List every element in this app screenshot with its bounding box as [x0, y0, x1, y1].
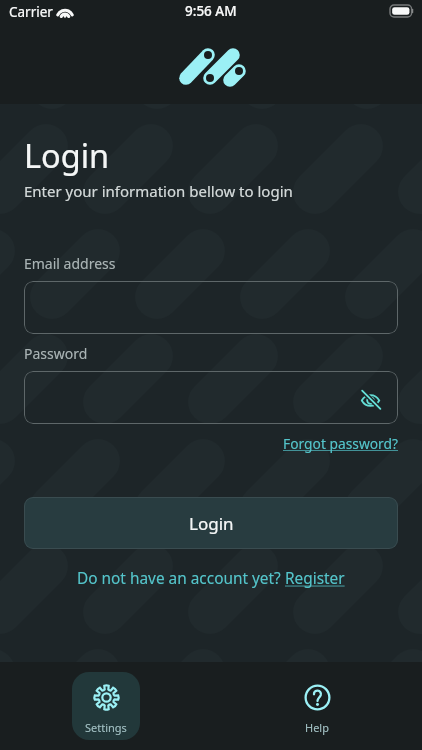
staticText: Password [24, 344, 88, 363]
staticText: Settings [85, 720, 127, 735]
button[interactable]: Register [285, 568, 345, 589]
staticText: Help [305, 720, 329, 735]
staticText: Enter your information bellow to login [24, 181, 293, 201]
staticText: Do not have an account yet? [77, 568, 285, 589]
staticText: Forgot password? [283, 434, 398, 453]
staticText: Register [285, 568, 345, 589]
button[interactable] [24, 281, 398, 334]
button[interactable]: Settings [72, 672, 140, 740]
staticText: 9:56 AM [185, 2, 237, 20]
button[interactable]: Show password [356, 383, 386, 413]
staticText: Login [189, 512, 234, 535]
staticText: Login [24, 133, 110, 177]
button[interactable]: Help [283, 672, 351, 740]
button[interactable]: Forgot password? [283, 434, 398, 453]
staticText: Carrier [9, 3, 53, 21]
staticText: Email address [24, 254, 116, 273]
button[interactable]: Login [24, 497, 398, 549]
